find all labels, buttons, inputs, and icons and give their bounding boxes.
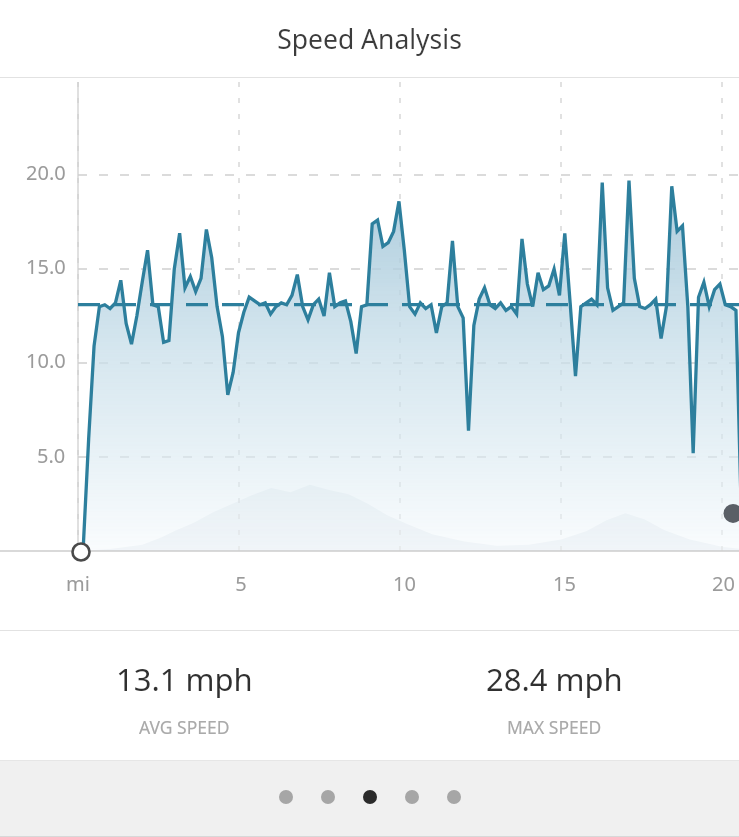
button[interactable]: 13.1 mph [0, 631, 369, 739]
button[interactable]: Page 4 [405, 790, 419, 804]
staticText: 10 [393, 570, 416, 597]
button[interactable]: Page 3 [363, 790, 377, 804]
staticText: 5 [235, 570, 247, 597]
staticText: 13.1 mph [116, 658, 253, 700]
staticText: 10.0 [26, 347, 66, 374]
staticText: 28.4 mph [486, 658, 623, 700]
staticText: 5.0 [37, 442, 66, 469]
staticText: AVG SPEED [139, 715, 230, 739]
staticText: 20 [712, 570, 735, 597]
staticText: 15 [553, 570, 576, 597]
staticText: 20.0 [26, 159, 66, 186]
button[interactable]: Page 2 [321, 790, 335, 804]
button[interactable]: 28.4 mph [369, 631, 739, 739]
button[interactable]: Page 1 [279, 790, 293, 804]
staticText: Speed Analysis [277, 21, 462, 57]
button[interactable]: Page 5 [447, 790, 461, 804]
staticText: MAX SPEED [507, 715, 602, 739]
staticText: 15.0 [26, 253, 66, 280]
staticText: mi [66, 570, 90, 597]
